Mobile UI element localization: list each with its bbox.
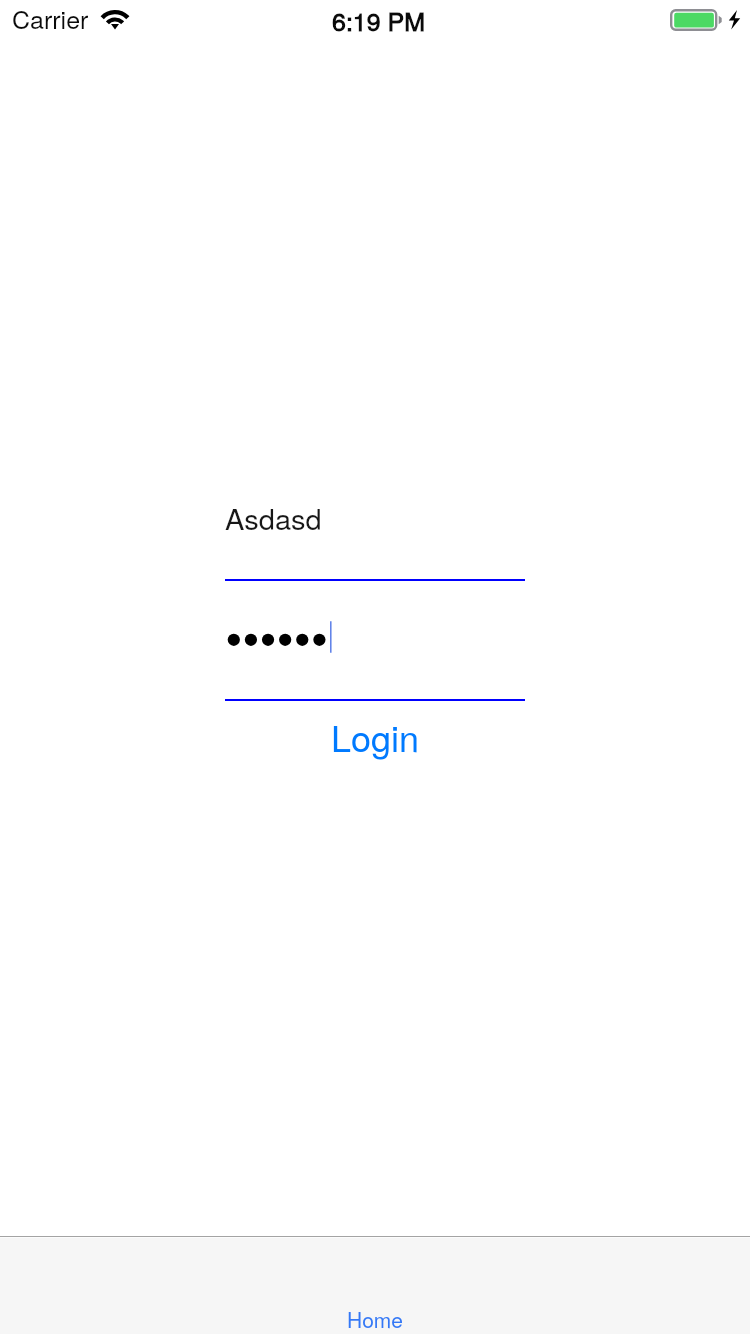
button[interactable]: Home: [325, 1301, 426, 1334]
other: Wi-Fi signal: [98, 4, 134, 34]
other: Battery charging: [666, 0, 750, 40]
staticText: Carrier: [12, 0, 89, 36]
staticText: Asdasd: [225, 497, 322, 539]
staticText: Login: [331, 711, 420, 763]
staticText: 6:19 PM: [332, 2, 426, 38]
button[interactable]: Login: [0, 707, 750, 767]
button[interactable]: Password: [225, 617, 525, 701]
button[interactable]: Asdasd: [225, 497, 525, 581]
staticText: Home: [347, 1304, 404, 1334]
